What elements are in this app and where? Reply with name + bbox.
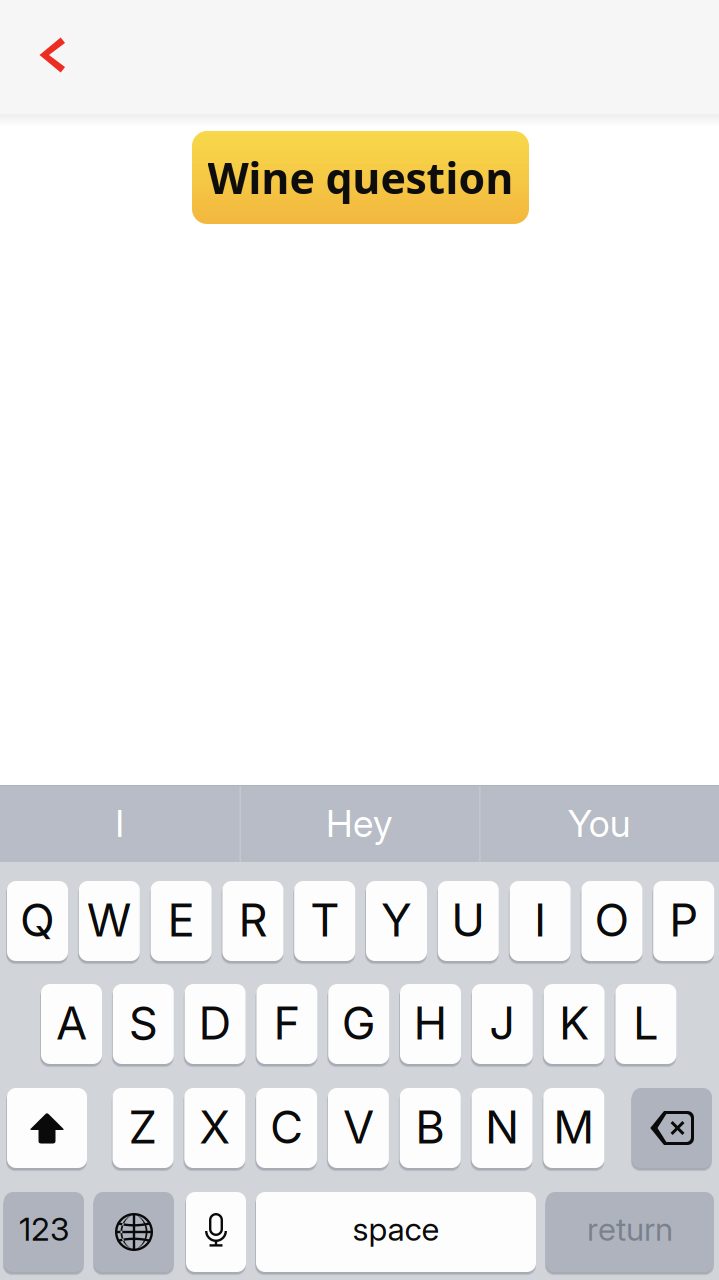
button[interactable]: J xyxy=(472,984,533,1064)
button[interactable]: D xyxy=(185,984,246,1064)
button[interactable]: space xyxy=(256,1192,536,1272)
button[interactable]: A xyxy=(41,984,102,1064)
button[interactable]: B xyxy=(400,1088,461,1168)
button[interactable]: Shift xyxy=(7,1088,87,1168)
staticText: H xyxy=(413,996,447,1050)
staticText: I xyxy=(534,893,546,947)
staticText: Y xyxy=(381,893,412,947)
staticText: T xyxy=(310,893,339,947)
staticText: M xyxy=(553,1100,594,1154)
staticText: You xyxy=(568,801,631,846)
button[interactable]: V xyxy=(328,1088,389,1168)
button[interactable]: Delete xyxy=(632,1088,712,1168)
button[interactable]: Y xyxy=(366,881,427,961)
staticText: I xyxy=(115,801,124,846)
staticText: J xyxy=(489,996,515,1050)
staticText: R xyxy=(238,893,267,947)
staticText: P xyxy=(669,893,698,947)
staticText: C xyxy=(270,1100,303,1154)
staticText: N xyxy=(485,1100,519,1154)
button[interactable]: Z xyxy=(112,1088,173,1168)
staticText: K xyxy=(559,996,589,1050)
button[interactable]: You xyxy=(479,785,719,862)
staticText: U xyxy=(451,893,485,947)
staticText: return xyxy=(587,1210,673,1248)
staticText: X xyxy=(199,1100,230,1154)
button[interactable]: Q xyxy=(7,881,68,961)
staticText: Q xyxy=(20,893,55,947)
staticText: D xyxy=(199,996,232,1050)
button[interactable]: I xyxy=(510,881,571,961)
button[interactable]: K xyxy=(544,984,605,1064)
staticText: E xyxy=(168,893,195,947)
button[interactable]: N xyxy=(471,1088,532,1168)
button[interactable]: T xyxy=(294,881,355,961)
staticText: space xyxy=(352,1210,439,1248)
button[interactable]: Back xyxy=(33,29,73,81)
button[interactable]: H xyxy=(400,984,461,1064)
button[interactable]: G xyxy=(328,984,389,1064)
staticText: Hey xyxy=(326,801,393,846)
button[interactable]: Next keyboard xyxy=(94,1192,174,1272)
button[interactable]: C xyxy=(256,1088,317,1168)
staticText: L xyxy=(633,996,659,1050)
button[interactable]: S xyxy=(113,984,174,1064)
button[interactable]: Numbers xyxy=(4,1192,84,1272)
button[interactable]: U xyxy=(438,881,499,961)
staticText: W xyxy=(87,893,132,947)
staticText: O xyxy=(594,893,629,947)
staticText: S xyxy=(129,996,158,1050)
staticText: G xyxy=(342,996,376,1050)
button[interactable]: L xyxy=(615,984,676,1064)
button[interactable]: R xyxy=(222,881,283,961)
button[interactable]: F xyxy=(256,984,317,1064)
staticText: V xyxy=(343,1100,374,1154)
button[interactable]: P xyxy=(653,881,714,961)
button[interactable]: I xyxy=(0,785,240,862)
staticText: B xyxy=(415,1100,445,1154)
button[interactable]: E xyxy=(151,881,212,961)
button[interactable]: Dictation xyxy=(186,1192,246,1272)
button[interactable]: M xyxy=(543,1088,604,1168)
staticText: A xyxy=(56,996,87,1050)
staticText: Z xyxy=(128,1100,157,1154)
staticText: F xyxy=(273,996,300,1050)
button[interactable]: Wine question xyxy=(192,131,529,224)
staticText: Wine question xyxy=(207,149,513,206)
button[interactable]: X xyxy=(184,1088,245,1168)
staticText: 123 xyxy=(19,1210,69,1248)
button[interactable]: return xyxy=(546,1192,714,1272)
button[interactable]: W xyxy=(79,881,140,961)
button[interactable]: O xyxy=(581,881,642,961)
button[interactable]: Hey xyxy=(240,785,479,862)
